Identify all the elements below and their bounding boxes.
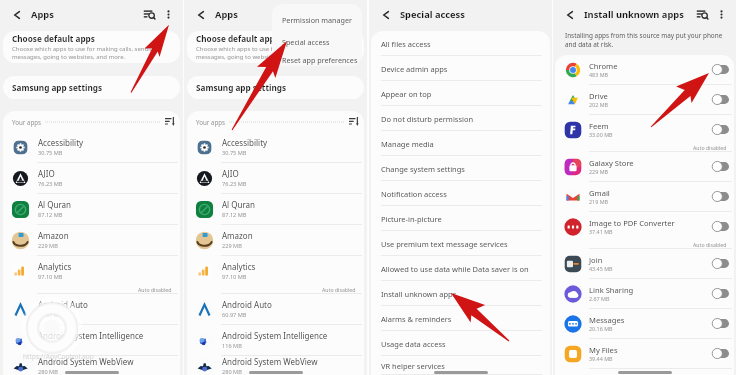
staticText: 97.10 MB: [222, 273, 247, 281]
button[interactable]: Permission manager: [272, 9, 362, 31]
button[interactable]: Toggle Drive: [712, 94, 729, 105]
button[interactable]: Drive: [555, 85, 734, 114]
button[interactable]: Back: [11, 9, 23, 21]
staticText: Choose which apps to use for making call…: [196, 45, 360, 61]
button[interactable]: Samsung app settings: [187, 76, 364, 99]
button[interactable]: Usage data access: [371, 331, 550, 356]
button[interactable]: Back: [380, 9, 392, 21]
button[interactable]: More options: [163, 9, 174, 20]
button[interactable]: Toggle Link Sharing: [712, 288, 729, 299]
button[interactable]: Allowed to use data while Data saver is …: [371, 256, 550, 281]
button[interactable]: Special access: [272, 31, 362, 53]
button[interactable]: Android Auto: [187, 294, 364, 324]
button[interactable]: Amazon: [187, 225, 364, 255]
staticText: Install unknown apps: [381, 289, 457, 299]
button[interactable]: Join: [555, 249, 734, 278]
staticText: 39.44 MB: [589, 355, 613, 362]
button[interactable]: Toggle Feem: [712, 124, 729, 135]
button[interactable]: Galaxy Store: [555, 152, 734, 181]
button[interactable]: Back: [564, 9, 576, 21]
button[interactable]: Manage media: [371, 131, 550, 156]
staticText: Auto disabled: [693, 241, 727, 248]
button[interactable]: Accessibility: [187, 132, 364, 162]
button[interactable]: Choose default apps: [3, 31, 180, 63]
button[interactable]: Messages: [555, 309, 734, 338]
button[interactable]: AJIO: [3, 163, 180, 193]
button[interactable]: Sort: [165, 117, 174, 126]
staticText: Apps: [215, 8, 238, 21]
staticText: 97.10 MB: [38, 273, 63, 281]
button[interactable]: My Files: [555, 339, 734, 368]
button[interactable]: Appear on top: [371, 81, 550, 106]
button[interactable]: VR helper services: [371, 356, 550, 375]
button[interactable]: Device admin apps: [371, 56, 550, 81]
staticText: Picture-in-picture: [381, 214, 442, 224]
button[interactable]: Alarms & reminders: [371, 306, 550, 331]
button[interactable]: Notification access: [371, 181, 550, 206]
staticText: 229 MB: [38, 242, 58, 250]
staticText: 2.67 MB: [589, 295, 610, 302]
button[interactable]: Do not disturb permission: [371, 106, 550, 131]
button[interactable]: Reset app preferences: [272, 53, 362, 66]
staticText: Android System Intelligence: [222, 330, 328, 341]
button[interactable]: Picture-in-picture: [371, 206, 550, 231]
button[interactable]: Toggle Image to PDF Converter: [712, 221, 729, 232]
button[interactable]: Gmail: [555, 182, 734, 211]
staticText: Analytics: [222, 261, 256, 272]
button[interactable]: Link Sharing: [555, 279, 734, 308]
button[interactable]: Al Quran: [3, 194, 180, 224]
staticText: 30.75 MB: [38, 149, 63, 157]
button[interactable]: Android System WebView: [3, 356, 180, 375]
staticText: 202 MB: [589, 101, 609, 108]
button[interactable]: Android System Intelligence: [3, 325, 180, 355]
staticText: Choose which apps to use for making call…: [12, 45, 176, 61]
button[interactable]: Toggle Chrome: [712, 64, 729, 75]
button[interactable]: Android System WebView: [187, 356, 364, 375]
button[interactable]: Analytics: [3, 256, 180, 286]
button[interactable]: Toggle Join: [712, 258, 729, 269]
button[interactable]: Toggle My Files: [712, 348, 729, 359]
button[interactable]: More options: [716, 9, 727, 20]
staticText: Al Quran: [222, 199, 256, 210]
button[interactable]: Accessibility: [3, 132, 180, 162]
staticText: Your apps: [196, 118, 225, 126]
button[interactable]: Image to PDF Converter: [555, 212, 734, 241]
staticText: Auto disabled: [322, 286, 356, 293]
button[interactable]: Back: [195, 9, 207, 21]
staticText: Accessibility: [38, 137, 84, 148]
button[interactable]: Toggle Messages: [712, 318, 729, 329]
staticText: Change system settings: [381, 164, 465, 174]
button[interactable]: Change system settings: [371, 156, 550, 181]
staticText: Do not disturb permission: [381, 114, 474, 124]
button[interactable]: Al Quran: [187, 194, 364, 224]
staticText: Special access: [282, 37, 330, 47]
staticText: https://AnyControl.app: [23, 352, 94, 361]
staticText: 280 MB: [38, 368, 58, 375]
button[interactable]: Amazon: [3, 225, 180, 255]
button[interactable]: Sort: [349, 117, 358, 126]
staticText: Usage data access: [381, 339, 446, 349]
staticText: 20.16 MB: [589, 325, 613, 332]
button[interactable]: Samsung app settings: [3, 76, 180, 99]
button[interactable]: Android System Intelligence: [187, 325, 364, 355]
button[interactable]: AJIO: [187, 163, 364, 193]
button[interactable]: Choose default apps: [187, 31, 364, 63]
staticText: Samsung app settings: [196, 82, 286, 93]
button[interactable]: Use premium text message services: [371, 231, 550, 256]
staticText: Use premium text message services: [381, 239, 508, 249]
button[interactable]: Search: [143, 8, 156, 21]
staticText: AJIO: [222, 168, 239, 179]
staticText: 229 MB: [222, 242, 242, 250]
button[interactable]: Search: [696, 8, 709, 21]
button[interactable]: All files access: [371, 31, 550, 56]
button[interactable]: Chrome: [555, 55, 734, 84]
button[interactable]: Feem: [555, 115, 734, 144]
button[interactable]: Android Auto: [3, 294, 180, 324]
button[interactable]: Install unknown apps: [371, 281, 550, 306]
staticText: Installing apps from this source may put…: [565, 31, 730, 49]
button[interactable]: Analytics: [187, 256, 364, 286]
staticText: 229 MB: [589, 168, 609, 175]
button[interactable]: Toggle Galaxy Store: [712, 161, 729, 172]
button[interactable]: Toggle Gmail: [712, 191, 729, 202]
staticText: Amazon: [38, 230, 69, 241]
